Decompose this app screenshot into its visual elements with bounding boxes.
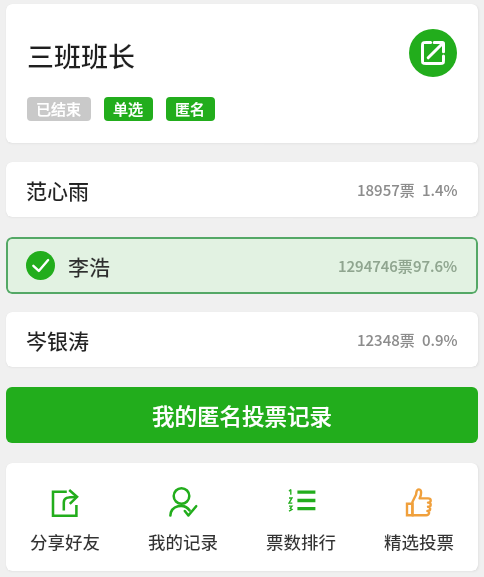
- staticText: 范心雨: [26, 175, 89, 205]
- button[interactable]: 票数排行: [242, 463, 360, 571]
- button[interactable]: 匿名: [166, 97, 215, 121]
- staticText: 李浩: [68, 251, 110, 281]
- button[interactable]: 单选: [104, 97, 153, 121]
- staticText: 我的匿名投票记录: [152, 399, 333, 432]
- button[interactable]: 精选投票: [360, 463, 478, 571]
- staticText: 已结束: [36, 98, 82, 120]
- staticText: 精选投票: [384, 529, 454, 554]
- staticText: 1294746票: [338, 255, 413, 277]
- button[interactable]: 李浩: [6, 237, 478, 294]
- staticText: 三班班长: [27, 36, 135, 75]
- staticText: 97.6%: [413, 255, 458, 277]
- staticText: 岑银涛: [26, 325, 89, 355]
- staticText: 匿名: [175, 98, 206, 120]
- button[interactable]: 分享: [409, 29, 457, 77]
- button[interactable]: 已结束: [27, 97, 91, 121]
- staticText: 12348票: [357, 329, 415, 351]
- staticText: 我的记录: [148, 529, 218, 554]
- staticText: 单选: [113, 98, 144, 120]
- staticText: 1.4%: [422, 179, 458, 201]
- staticText: 分享好友: [30, 529, 100, 554]
- staticText: 0.9%: [422, 329, 458, 351]
- button[interactable]: 我的匿名投票记录: [6, 387, 478, 443]
- button[interactable]: 我的记录: [124, 463, 242, 571]
- staticText: 票数排行: [266, 529, 336, 554]
- button[interactable]: 范心雨: [6, 162, 478, 217]
- button[interactable]: 岑银涛: [6, 312, 478, 367]
- staticText: 18957票: [357, 179, 415, 201]
- button[interactable]: 分享好友: [6, 463, 124, 571]
